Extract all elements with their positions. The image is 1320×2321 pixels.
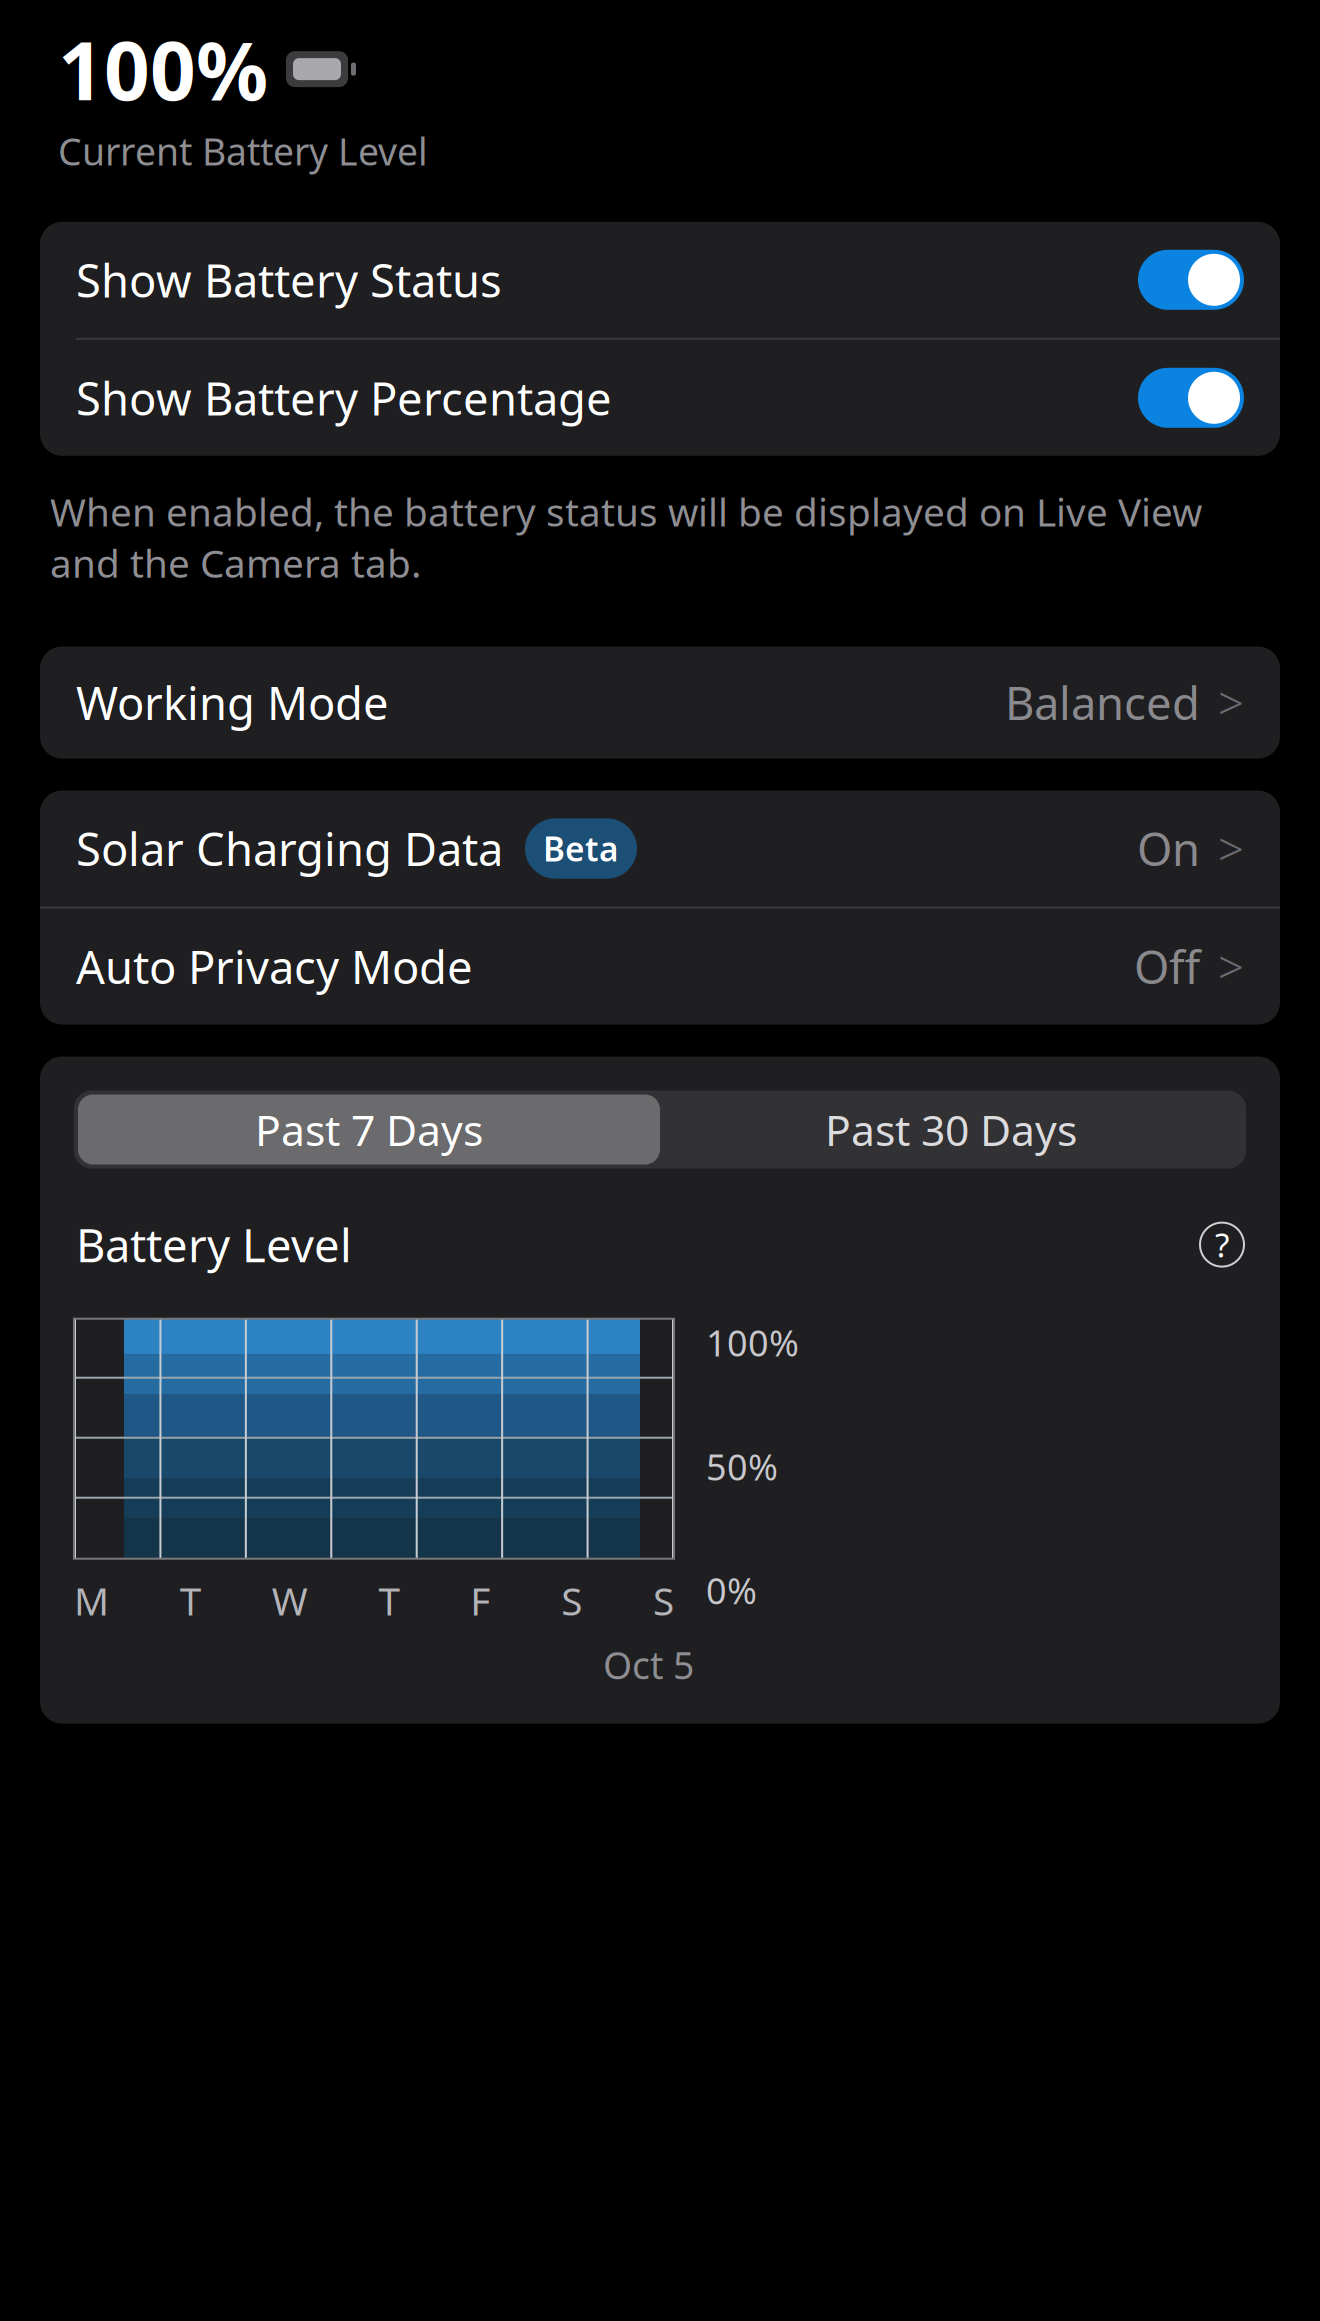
staticText: Solar Charging Data (76, 818, 503, 879)
staticText: Balanced (1005, 672, 1200, 733)
staticText: Battery Level (76, 1214, 352, 1275)
button[interactable]: Past 7 Days (78, 1094, 660, 1164)
staticText: Beta (543, 826, 619, 871)
staticText: > (1218, 818, 1244, 879)
staticText: W (272, 1575, 308, 1626)
staticText: > (1218, 672, 1244, 733)
staticText: S (561, 1575, 582, 1626)
staticText: 100% (706, 1319, 799, 1366)
staticText: Past 7 Days (255, 1101, 483, 1158)
staticText: On (1137, 818, 1200, 879)
button[interactable]: Help (1200, 1223, 1244, 1267)
staticText: Show Battery Status (76, 250, 502, 310)
staticText: Auto Privacy Mode (76, 936, 473, 997)
button[interactable]: Past 30 Days (660, 1094, 1242, 1164)
staticText: F (470, 1575, 490, 1626)
staticText: 100% (58, 16, 268, 122)
staticText: When enabled, the battery status will be… (50, 486, 1202, 588)
button[interactable]: Working Mode (40, 646, 1280, 758)
button[interactable]: Show Battery Status (40, 222, 1280, 338)
staticText: 0% (706, 1566, 757, 1614)
staticText: M (74, 1575, 109, 1626)
staticText: Oct 5 (603, 1640, 694, 1690)
staticText: Working Mode (76, 672, 389, 733)
staticText: ? (1215, 1222, 1229, 1267)
staticText: Current Battery Level (58, 126, 428, 176)
button[interactable]: Show Battery Percentage (40, 340, 1280, 456)
button[interactable]: Auto Privacy Mode (40, 908, 1280, 1024)
staticText: S (653, 1575, 674, 1626)
button[interactable]: Solar Charging Data (40, 790, 1280, 906)
staticText: Show Battery Percentage (76, 368, 612, 428)
staticText: Past 30 Days (825, 1101, 1077, 1158)
staticText: > (1218, 936, 1244, 997)
staticText: T (378, 1575, 399, 1626)
staticText: T (180, 1575, 201, 1626)
staticText: Off (1134, 936, 1200, 997)
staticText: 50% (706, 1442, 778, 1490)
